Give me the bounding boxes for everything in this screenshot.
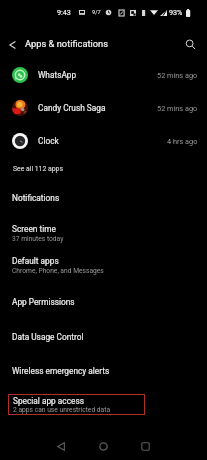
button[interactable]: Wireless emergency alerts bbox=[0, 358, 207, 388]
staticText: Screen time bbox=[12, 224, 56, 234]
button[interactable]: Notifications bbox=[0, 185, 207, 215]
button[interactable]: Recent apps bbox=[141, 442, 150, 451]
staticText: 52 mins ago bbox=[157, 104, 198, 113]
staticText: Notifications bbox=[12, 193, 60, 203]
button[interactable]: App Permissions bbox=[0, 289, 207, 319]
staticText: WhatsApp bbox=[38, 70, 77, 80]
button[interactable]: Home bbox=[99, 442, 108, 451]
button[interactable]: See all 112 apps bbox=[0, 159, 207, 183]
button[interactable]: Candy Crush Saga bbox=[0, 92, 207, 124]
button[interactable]: Default apps bbox=[0, 248, 207, 278]
staticText: 9:43 bbox=[57, 8, 71, 16]
staticText: 37 minutes today bbox=[12, 235, 64, 243]
staticText: 93% bbox=[169, 8, 183, 16]
button[interactable]: Screen time bbox=[0, 216, 207, 246]
staticText: Default apps bbox=[12, 256, 59, 266]
button[interactable]: Back bbox=[2, 34, 23, 55]
staticText: Special app access bbox=[13, 396, 84, 406]
staticText: Candy Crush Saga bbox=[38, 103, 106, 113]
staticText: Wireless emergency alerts bbox=[12, 366, 110, 376]
button[interactable]: Search bbox=[180, 34, 201, 55]
button[interactable]: Data Usage Control bbox=[0, 324, 207, 354]
staticText: App Permissions bbox=[12, 297, 75, 307]
staticText: 2 apps can use unrestricted data bbox=[13, 406, 111, 414]
staticText: 4 hrs ago bbox=[167, 137, 198, 146]
staticText: 9/7 bbox=[92, 9, 101, 16]
staticText: Apps & notifications bbox=[25, 38, 109, 49]
staticText: See all 112 apps bbox=[13, 165, 63, 173]
button[interactable]: Clock bbox=[0, 125, 207, 157]
button[interactable]: Back bbox=[57, 442, 65, 451]
staticText: 52 mins ago bbox=[157, 71, 198, 80]
staticText: Data Usage Control bbox=[12, 332, 84, 342]
staticText: Chrome, Phone, and Messages bbox=[12, 267, 104, 275]
button[interactable]: WhatsApp bbox=[0, 59, 207, 91]
staticText: Clock bbox=[38, 136, 59, 146]
button[interactable]: Special app access bbox=[8, 394, 145, 415]
